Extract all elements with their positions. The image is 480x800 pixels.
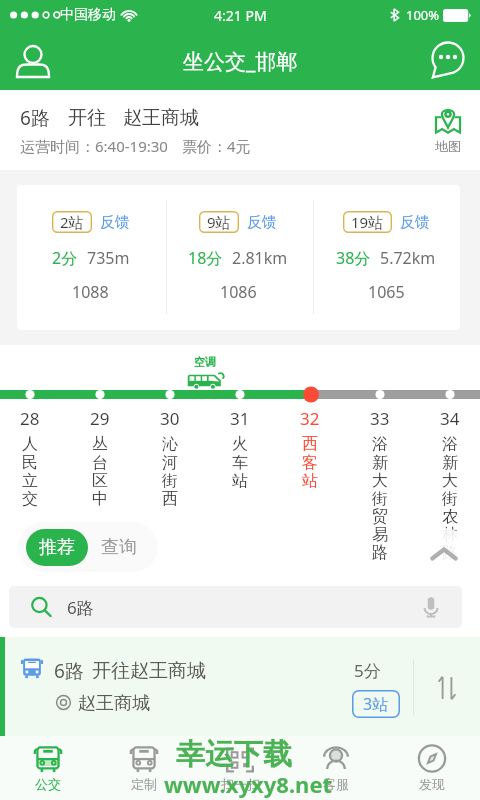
button[interactable]: 公交 [0,736,96,800]
button[interactable]: 33 [350,407,410,562]
staticText: 28 [20,407,40,430]
button[interactable]: Scroll to top [418,528,470,580]
staticText: 30 [160,407,180,430]
staticText: 公交 [35,776,61,792]
staticText: 开往 [68,106,106,130]
staticText: 2.81km [232,247,288,269]
staticText: 6路 [20,105,50,131]
staticText: 中国移动 [60,6,116,24]
staticText: 1086 [220,281,257,303]
staticText: 坐公交_邯郸 [183,47,298,76]
staticText: 扫一扫 [221,776,260,792]
button[interactable]: 发现 [384,736,480,800]
staticText: 1065 [368,281,405,303]
button[interactable]: 29 [70,407,130,508]
staticText: 34 [440,407,460,430]
staticText: 运营时间：6:40-19:30 [20,136,168,156]
staticText: 西 客 站 [302,434,318,490]
staticText: 反馈 [100,213,130,232]
button[interactable]: 28 [0,407,60,508]
staticText: 29 [90,407,110,430]
staticText: 空调 [194,355,216,369]
staticText: 18分 [188,247,223,269]
staticText: 19站 [351,212,384,232]
staticText: 赵王商城 [78,692,150,715]
staticText: 地图 [435,138,461,154]
staticText: 反馈 [247,213,277,232]
staticText: 客服 [323,776,349,792]
button[interactable]: Map [430,103,466,158]
staticText: 38分 [336,247,371,269]
button[interactable]: 34 [420,407,480,562]
button[interactable]: 定制 [96,736,192,800]
staticText: 5.72km [380,247,436,269]
staticText: 9站 [207,212,231,232]
staticText: 1088 [72,281,109,303]
staticText: www.xyxy8.net [164,769,333,799]
button[interactable]: 查询 [88,529,150,566]
staticText: 推荐 [39,536,75,559]
staticText: 反馈 [400,213,430,232]
staticText: 4:21 PM [214,6,267,25]
button[interactable]: 客服 [288,736,384,800]
staticText: 查询 [101,536,137,559]
staticText: 31 [230,407,250,430]
staticText: 2站 [60,212,84,232]
staticText: 6路 [67,596,94,619]
staticText: 发现 [419,776,445,792]
staticText: 32 [300,407,320,430]
staticText: 浴 新 大 街 农 林 路 [442,434,458,562]
button[interactable]: 推荐 [26,529,88,566]
button[interactable]: Profile [10,41,56,81]
button[interactable]: Messages [428,40,468,78]
staticText: 开往赵王商城 [92,659,206,683]
button[interactable]: 6路 [9,586,462,628]
staticText: 6路 [54,658,84,684]
staticText: 丛 台 区 中 [92,434,108,508]
staticText: 100% [406,6,440,24]
staticText: 浴 新 大 街 贸 易 路 [372,434,388,562]
staticText: 沁 河 街 西 [162,434,178,508]
staticText: 33 [370,407,390,430]
button[interactable]: 31 [210,407,270,490]
button[interactable]: 30 [140,407,200,508]
staticText: 735m [87,247,130,269]
button[interactable]: Reverse direction [428,669,466,707]
staticText: 定制 [131,776,157,792]
staticText: 人 民 立 交 [22,434,38,508]
staticText: 票价：4元 [182,136,251,156]
staticText: 3站 [363,693,389,715]
staticText: 2分 [52,247,78,269]
staticText: 火 车 站 [232,434,248,490]
button[interactable]: 扫一扫 [192,736,288,800]
button[interactable]: 32 [280,407,340,490]
staticText: 幸运下载 [176,736,292,773]
staticText: 5分 [354,659,381,682]
staticText: 赵王商城 [123,106,199,130]
